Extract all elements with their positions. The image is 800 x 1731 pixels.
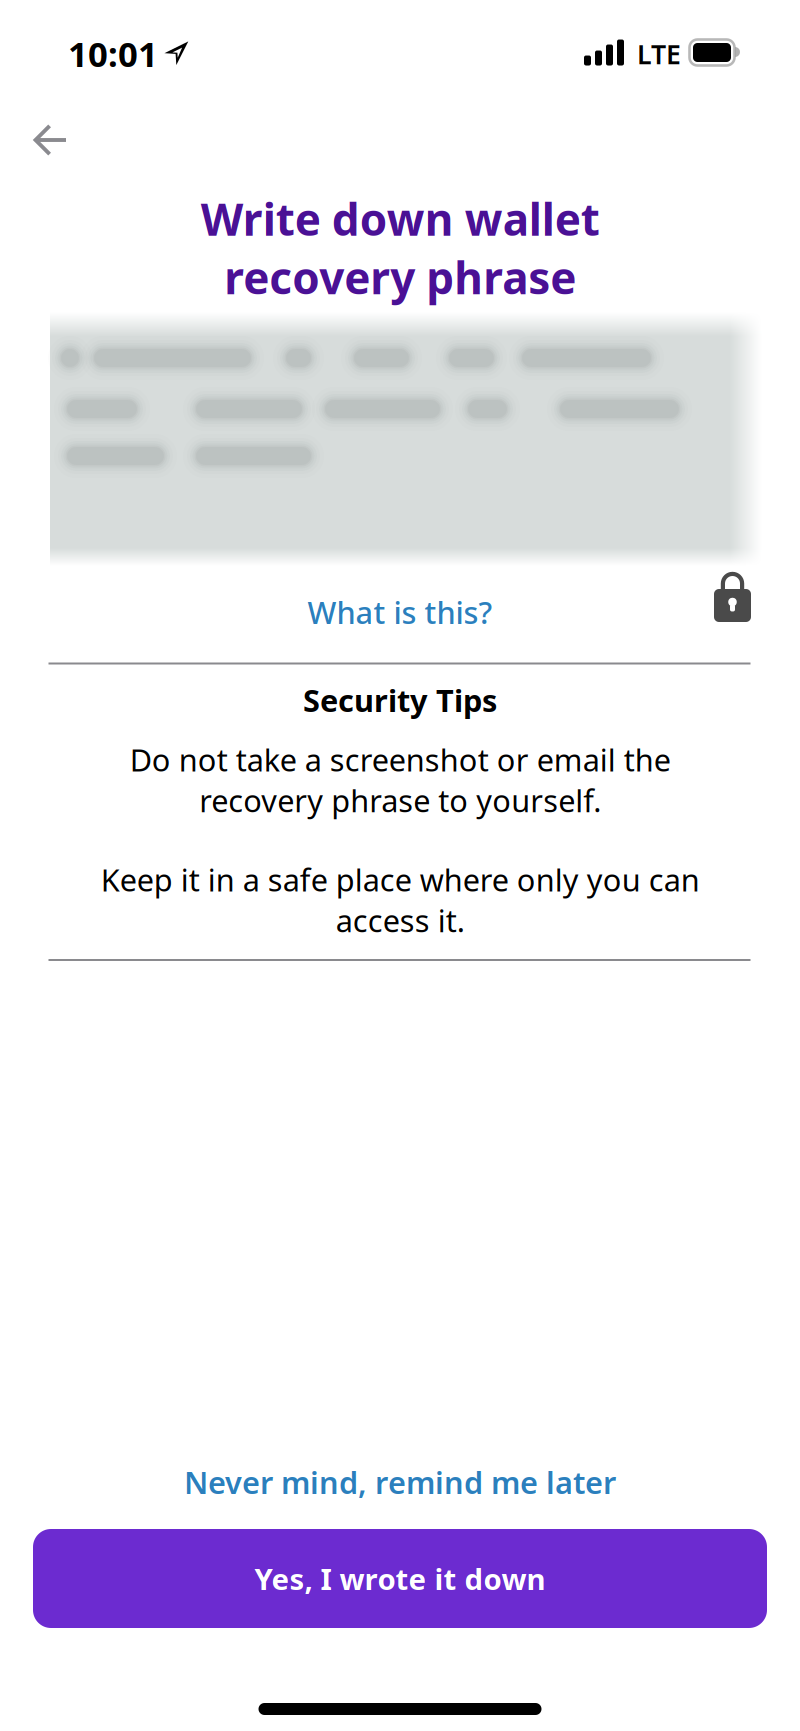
button[interactable]: Yes, I wrote it down [33, 1529, 767, 1628]
staticText: What is this? [307, 592, 492, 632]
button[interactable]: Never mind, remind me later [150, 1451, 650, 1513]
staticText: 10:01 [68, 30, 158, 76]
button[interactable]: Back [4, 98, 96, 182]
staticText: Keep it in a safe place where only you c… [100, 859, 699, 941]
staticText: Security Tips [303, 680, 497, 720]
staticText: LTE [637, 36, 681, 72]
staticText: Write down wallet recovery phrase [200, 190, 599, 306]
staticText: Do not take a screenshot or email the re… [129, 739, 670, 821]
staticText: Never mind, remind me later [184, 1462, 616, 1502]
button[interactable]: What is this? [250, 582, 550, 642]
staticText: Yes, I wrote it down [254, 1559, 545, 1598]
